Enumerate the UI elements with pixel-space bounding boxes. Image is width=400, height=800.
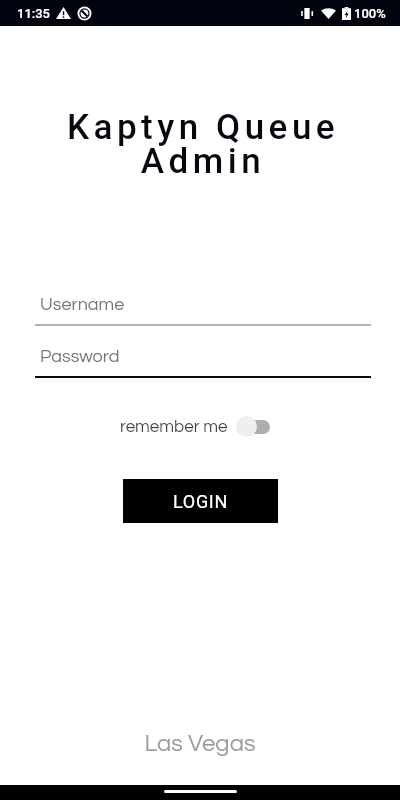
staticText: 100% bbox=[354, 6, 386, 21]
other: remember me bbox=[236, 415, 270, 438]
button[interactable]: Password bbox=[35, 347, 371, 366]
staticText: Las Vegas bbox=[0, 731, 400, 756]
button[interactable]: Username bbox=[35, 295, 371, 314]
staticText: LOGIN bbox=[173, 491, 229, 512]
staticText: 11:35 bbox=[17, 6, 51, 21]
button[interactable]: LOGIN bbox=[123, 479, 278, 523]
button[interactable]: remember me bbox=[120, 415, 270, 438]
staticText: Kaptyn Queue Admin bbox=[3, 107, 400, 181]
other: Home bbox=[164, 790, 237, 793]
staticText: remember me bbox=[120, 418, 228, 436]
staticText: Username bbox=[40, 295, 125, 314]
staticText: Password bbox=[40, 347, 120, 366]
